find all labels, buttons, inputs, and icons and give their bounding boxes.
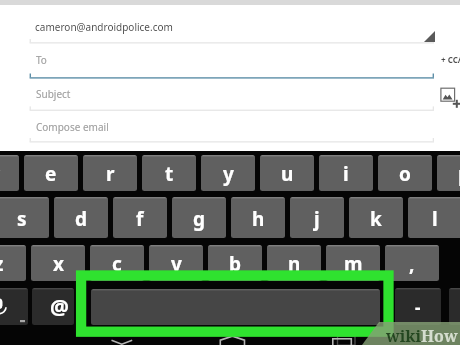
staticText: u	[281, 161, 294, 187]
staticText: ,	[409, 251, 415, 277]
staticText: i	[343, 161, 349, 187]
staticText: p	[458, 161, 460, 187]
button[interactable]: h	[231, 197, 285, 238]
staticText: o	[399, 161, 411, 187]
staticText: + CC/	[441, 54, 460, 65]
staticText: c	[112, 251, 122, 277]
button[interactable]: l	[408, 197, 460, 238]
staticText: x	[53, 251, 64, 277]
button[interactable]: Space	[91, 289, 380, 325]
staticText: g	[193, 206, 206, 232]
button[interactable]: o	[378, 155, 432, 191]
staticText: s	[17, 206, 27, 232]
button[interactable]: w	[0, 155, 19, 191]
staticText: e	[45, 161, 57, 187]
button[interactable]: c	[90, 245, 144, 281]
button[interactable]: b	[208, 245, 262, 281]
staticText: Subject	[36, 87, 71, 101]
staticText: d	[75, 206, 88, 232]
staticText: m	[344, 251, 363, 277]
staticText: v	[171, 251, 182, 277]
staticText: l	[432, 206, 438, 232]
staticText: b	[229, 251, 242, 277]
button[interactable]: -	[395, 288, 441, 325]
staticText: z	[0, 251, 4, 277]
button[interactable]: n	[267, 245, 321, 281]
button[interactable]: r	[83, 155, 137, 191]
staticText: h	[252, 206, 265, 232]
button[interactable]: p	[437, 155, 460, 191]
staticText: y	[223, 161, 234, 187]
staticText: t	[165, 161, 174, 187]
button[interactable]: g	[172, 197, 226, 238]
staticText: j	[314, 206, 320, 232]
button[interactable]: e	[24, 155, 78, 191]
button[interactable]: f	[113, 197, 167, 238]
staticText: To	[36, 53, 47, 67]
button[interactable]: y	[201, 155, 255, 191]
staticText: wiki	[386, 325, 422, 345]
button[interactable]: v	[149, 245, 203, 281]
staticText: How	[421, 325, 458, 345]
staticText: Compose email	[36, 120, 109, 134]
staticText: @	[50, 293, 69, 322]
button[interactable]: s	[0, 197, 49, 238]
button[interactable]: ,	[385, 245, 439, 281]
button[interactable]: k	[349, 197, 403, 238]
button[interactable]: x	[31, 245, 85, 281]
button[interactable]: d	[54, 197, 108, 238]
staticText: f	[136, 206, 144, 232]
button[interactable]: u	[260, 155, 314, 191]
button[interactable]: t	[142, 155, 196, 191]
button[interactable]: z	[0, 245, 26, 281]
button[interactable]: m	[326, 245, 380, 281]
staticText: n	[288, 251, 301, 277]
button[interactable]: @	[32, 288, 74, 325]
staticText: cameron@androidpolice.com	[35, 20, 173, 34]
button[interactable]: Voice input	[0, 288, 28, 325]
button[interactable]: i	[319, 155, 373, 191]
staticText: r	[106, 161, 115, 187]
button[interactable]: Return	[449, 288, 460, 325]
staticText: k	[370, 206, 382, 232]
staticText: -	[415, 296, 421, 319]
button[interactable]: j	[290, 197, 344, 238]
